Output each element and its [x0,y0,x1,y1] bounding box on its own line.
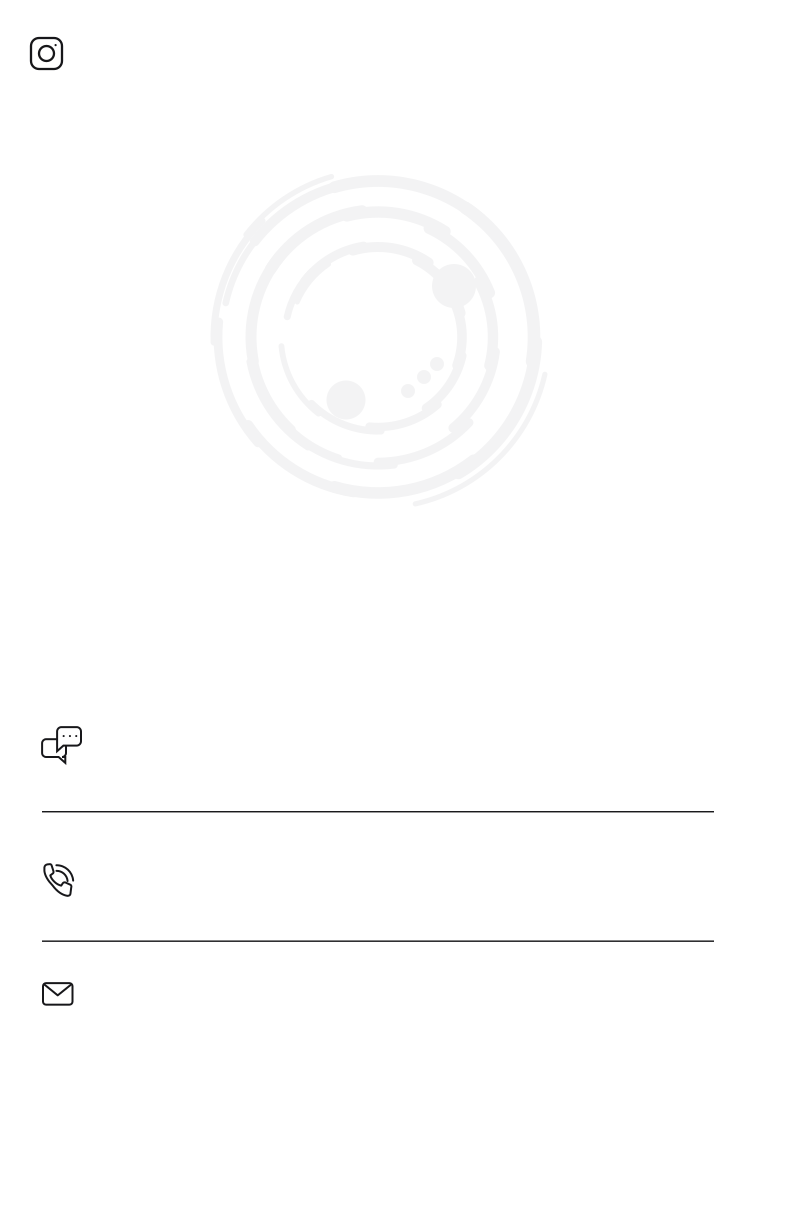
button[interactable]: Camera [0,0,792,83]
button[interactable]: Email [0,942,792,1070]
button[interactable]: Call [0,812,792,940]
button[interactable]: Send a message [0,683,792,811]
